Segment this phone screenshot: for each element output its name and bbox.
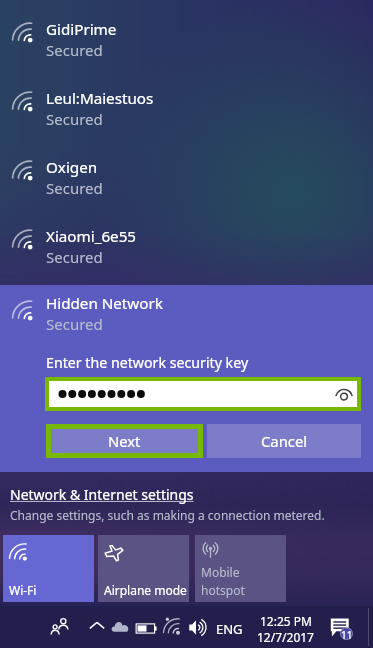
staticText: Mobile: [201, 564, 240, 580]
staticText: Enter the network security key: [46, 353, 249, 372]
button[interactable]: Wi-Fi: [0, 285, 373, 343]
button[interactable]: Action center, 11 new notifications: [328, 614, 356, 642]
button[interactable]: Show password: [49, 381, 357, 407]
staticText: 11: [341, 628, 353, 642]
staticText: Secured: [46, 247, 103, 267]
button[interactable]: Cancel: [207, 424, 361, 458]
staticText: Secured: [46, 40, 103, 60]
button[interactable]: Wi-Fi: [0, 0, 373, 69]
staticText: Xiaomi_6e55: [46, 226, 137, 247]
staticText: Oxigen: [46, 157, 98, 178]
staticText: Hidden Network: [46, 293, 163, 314]
staticText: Next: [108, 431, 141, 451]
button[interactable]: Airplane mode: [98, 535, 189, 602]
other: Wi-Fi: [12, 159, 35, 182]
other: Wi-Fi: [12, 299, 35, 322]
other: Wi-Fi: [12, 21, 35, 44]
staticText: ENG: [216, 620, 243, 638]
staticText: Secured: [46, 178, 103, 198]
staticText: 12:25 PM: [260, 613, 312, 629]
staticText: Cancel: [261, 431, 308, 451]
staticText: Secured: [46, 109, 103, 129]
button[interactable]: Wi-Fi: [0, 207, 373, 276]
staticText: Secured: [46, 314, 103, 334]
button[interactable]: Next: [51, 429, 198, 453]
staticText: 12/7/2017: [257, 629, 314, 645]
staticText: Network & Internet settings: [10, 485, 194, 504]
other: Wi-Fi: [12, 228, 35, 251]
button[interactable]: People: [50, 617, 69, 636]
button[interactable]: ENG: [216, 620, 243, 638]
button[interactable]: OneDrive: [111, 618, 129, 636]
button[interactable]: Mobile: [195, 535, 286, 602]
other: Wi-Fi: [12, 90, 35, 113]
button[interactable]: Network & Internet settings: [10, 485, 325, 523]
staticText: GidiPrime: [46, 19, 117, 40]
button[interactable]: Network: [163, 617, 182, 636]
staticText: Wi-Fi: [9, 582, 37, 598]
staticText: Leul:Maiestuos: [46, 88, 154, 109]
button[interactable]: Show hidden icons: [88, 618, 106, 636]
button[interactable]: Show password: [331, 381, 357, 407]
button[interactable]: Wi-Fi: [0, 69, 373, 138]
button[interactable]: Wi-Fi: [0, 138, 373, 207]
staticText: hotspot: [201, 582, 245, 598]
button[interactable]: Wi-Fi: [3, 535, 94, 602]
staticText: Change settings, such as making a connec…: [10, 507, 325, 523]
staticText: Airplane mode: [104, 582, 187, 598]
button[interactable]: 12:25 PM: [257, 613, 314, 645]
button[interactable]: Volume: [188, 617, 209, 638]
button[interactable]: Battery: [135, 617, 158, 640]
